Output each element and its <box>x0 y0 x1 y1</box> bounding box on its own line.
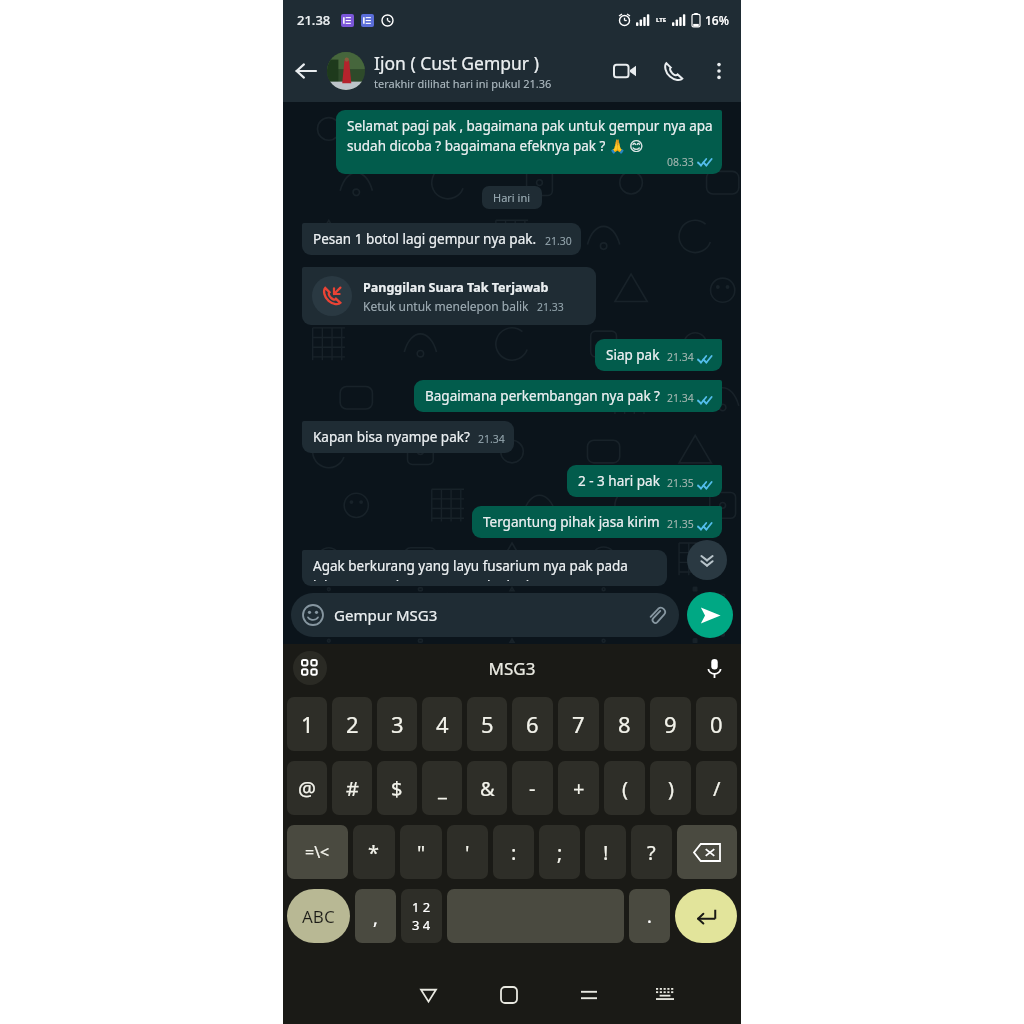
button[interactable]: Panggilan Suara Tak Terjawab <box>302 267 596 325</box>
staticText: * <box>368 839 380 866</box>
staticText: Panggilan Suara Tak Terjawab <box>363 279 549 296</box>
button[interactable]: 3 <box>377 697 417 751</box>
button[interactable]: Keyboard options <box>293 651 327 685</box>
staticText: Bagaimana perkembangan nya pak ? <box>425 387 660 405</box>
button[interactable]: : <box>493 825 534 879</box>
button[interactable]: Backspace <box>677 825 737 879</box>
staticText: ' <box>465 839 470 866</box>
button[interactable]: Bagaimana perkembangan nya pak ? <box>414 380 722 412</box>
staticText: : <box>511 839 517 866</box>
button[interactable]: 7 <box>558 697 599 751</box>
staticText: 7 <box>572 709 585 739</box>
button[interactable]: _ <box>422 761 462 815</box>
staticText: ; <box>557 839 563 866</box>
button[interactable]: Home <box>469 965 549 1024</box>
staticText: & <box>480 775 495 802</box>
button[interactable]: 1 2 <box>401 889 442 943</box>
staticText: ? <box>647 839 656 866</box>
button[interactable]: + <box>558 761 599 815</box>
button[interactable]: " <box>400 825 442 879</box>
button[interactable]: ; <box>539 825 580 879</box>
button[interactable]: ( <box>604 761 645 815</box>
button[interactable]: 5 <box>467 697 507 751</box>
button[interactable]: Attach <box>644 603 668 627</box>
button[interactable]: Ijon ( Cust Gempur ) <box>327 40 601 102</box>
button[interactable]: =\< <box>287 825 348 879</box>
button[interactable]: ! <box>585 825 626 879</box>
button[interactable]: $ <box>377 761 417 815</box>
staticText: 21.38 <box>297 11 331 29</box>
button[interactable]: Send <box>687 592 733 638</box>
staticText: 0 <box>710 709 723 739</box>
button[interactable]: Space <box>447 889 624 943</box>
button[interactable]: * <box>353 825 395 879</box>
button[interactable]: @ <box>287 761 327 815</box>
staticText: 5 <box>481 709 494 739</box>
button[interactable]: Gempur MSG3 <box>291 593 679 637</box>
button[interactable]: Siap pak <box>595 339 722 371</box>
button[interactable]: 8 <box>604 697 645 751</box>
button[interactable]: Agak berkurang yang layu fusarium nya pa… <box>302 550 667 586</box>
staticText: ! <box>603 839 609 866</box>
staticText: terakhir dilihat hari ini pukul 21.36 <box>374 76 552 91</box>
staticText: 1 <box>301 709 314 739</box>
staticText: Pesan 1 botol lagi gempur nya pak. <box>313 230 537 248</box>
button[interactable]: Hide keyboard <box>629 965 701 1024</box>
staticText: $ <box>391 775 403 802</box>
staticText: 08.33 <box>667 155 694 169</box>
button[interactable]: 4 <box>422 697 462 751</box>
button[interactable]: 6 <box>512 697 553 751</box>
button[interactable]: Tergantung pihak jasa kirim <box>472 506 722 538</box>
staticText: 3 4 <box>412 916 431 934</box>
staticText: 21.35 <box>667 517 694 531</box>
staticText: 3 <box>391 709 404 739</box>
staticText: Hari ini <box>493 190 531 205</box>
button[interactable]: Kapan bisa nyampe pak? <box>302 421 514 453</box>
button[interactable]: ' <box>447 825 488 879</box>
button[interactable]: Back <box>283 49 327 93</box>
button[interactable]: Voice call <box>649 47 697 95</box>
button[interactable]: ? <box>631 825 672 879</box>
staticText: 6 <box>526 709 539 739</box>
staticText: - <box>529 775 536 802</box>
staticText: @ <box>298 775 316 802</box>
button[interactable]: More options <box>697 49 741 93</box>
button[interactable]: Voice input <box>697 651 731 685</box>
button[interactable]: ) <box>650 761 691 815</box>
button[interactable]: - <box>512 761 553 815</box>
staticText: 2 <box>346 709 359 739</box>
staticText: # <box>346 775 359 802</box>
button[interactable]: / <box>696 761 737 815</box>
staticText: 2 - 3 hari pak <box>578 472 660 490</box>
button[interactable]: ABC <box>287 889 350 943</box>
button[interactable]: 9 <box>650 697 691 751</box>
staticText: Ketuk untuk menelepon balik <box>363 298 529 314</box>
button[interactable]: Pesan 1 botol lagi gempur nya pak. <box>302 223 581 255</box>
button[interactable]: Recent apps <box>549 965 629 1024</box>
button[interactable]: & <box>467 761 507 815</box>
staticText: Siap pak <box>606 346 660 364</box>
button[interactable]: , <box>355 889 396 943</box>
staticText: + <box>573 775 585 802</box>
button[interactable]: 1 <box>287 697 327 751</box>
staticText: ( <box>622 775 628 802</box>
button[interactable]: Back <box>388 965 469 1024</box>
staticText: 21.34 <box>667 350 694 364</box>
button[interactable]: Video call <box>601 47 649 95</box>
button[interactable]: # <box>332 761 372 815</box>
button[interactable]: Scroll to bottom <box>687 540 727 580</box>
staticText: 21.34 <box>667 391 694 405</box>
button[interactable]: Selamat pagi pak , bagaimana pak untuk g… <box>336 110 722 174</box>
staticText: Agak berkurang yang layu fusarium nya pa… <box>313 557 658 581</box>
button[interactable]: 2 - 3 hari pak <box>567 465 722 497</box>
staticText: 8 <box>618 709 631 739</box>
staticText: Ijon ( Cust Gempur ) <box>374 51 539 75</box>
button[interactable]: 2 <box>332 697 372 751</box>
staticText: , <box>373 906 378 931</box>
button[interactable]: Enter <box>675 889 737 943</box>
button[interactable]: 0 <box>696 697 737 751</box>
staticText: " <box>417 839 426 866</box>
staticText: ABC <box>302 905 335 928</box>
button[interactable]: . <box>629 889 670 943</box>
staticText: Selamat pagi pak , bagaimana pak untuk g… <box>347 117 713 155</box>
